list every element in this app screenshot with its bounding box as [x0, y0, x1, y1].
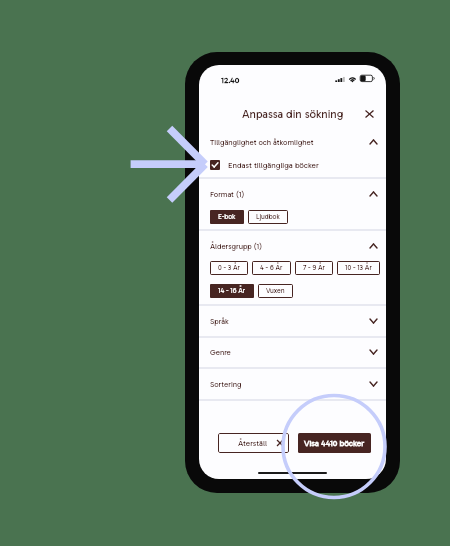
button[interactable]: Språk [199, 310, 386, 332]
staticText: Återställ [238, 438, 267, 448]
staticText: 14 - 16 År [218, 287, 246, 295]
button[interactable]: Sortering [199, 373, 386, 395]
button[interactable]: Genre [199, 341, 386, 363]
button[interactable]: Ljudbok [248, 210, 288, 224]
button[interactable]: 4 - 6 År [252, 261, 291, 275]
staticText: Vuxen [266, 287, 285, 295]
staticText: 4 - 6 År [260, 264, 283, 272]
staticText: Sortering [210, 380, 242, 389]
button[interactable]: E-bok [210, 210, 244, 224]
staticText: Åldersgrupp (1) [210, 242, 262, 251]
button[interactable]: Återställ [218, 433, 289, 453]
button[interactable]: Vuxen [258, 284, 293, 298]
staticText: Språk [210, 317, 229, 326]
button[interactable]: 7 - 9 År [295, 261, 333, 275]
staticText: 12.40 [221, 75, 240, 85]
staticText: 0 - 3 År [218, 264, 240, 272]
button[interactable]: Åldersgrupp (1) [199, 235, 386, 257]
button[interactable]: 0 - 3 År [210, 261, 248, 275]
staticText: Visa 4410 böcker [304, 438, 365, 448]
button[interactable]: Stäng [361, 106, 377, 122]
staticText: 7 - 9 År [303, 264, 325, 272]
button[interactable]: Visa 4410 böcker [298, 433, 371, 453]
staticText: 10 - 13 År [345, 264, 372, 272]
staticText: Tillgänglighet och åtkomlighet [210, 138, 314, 147]
button[interactable]: Tillgänglighet och åtkomlighet [199, 131, 386, 153]
button[interactable]: Format (1) [199, 183, 386, 205]
button[interactable]: 14 - 16 År [210, 284, 254, 298]
staticText: Anpassa din sökning [242, 107, 344, 121]
staticText: Genre [210, 348, 231, 357]
button[interactable]: 10 - 13 År [337, 261, 380, 275]
staticText: Endast tillgängliga böcker [228, 160, 319, 170]
staticText: E-bok [218, 213, 236, 221]
staticText: Format (1) [210, 190, 245, 199]
button[interactable]: Endast tillgängliga böcker [199, 153, 386, 177]
staticText: Ljudbok [256, 213, 280, 221]
